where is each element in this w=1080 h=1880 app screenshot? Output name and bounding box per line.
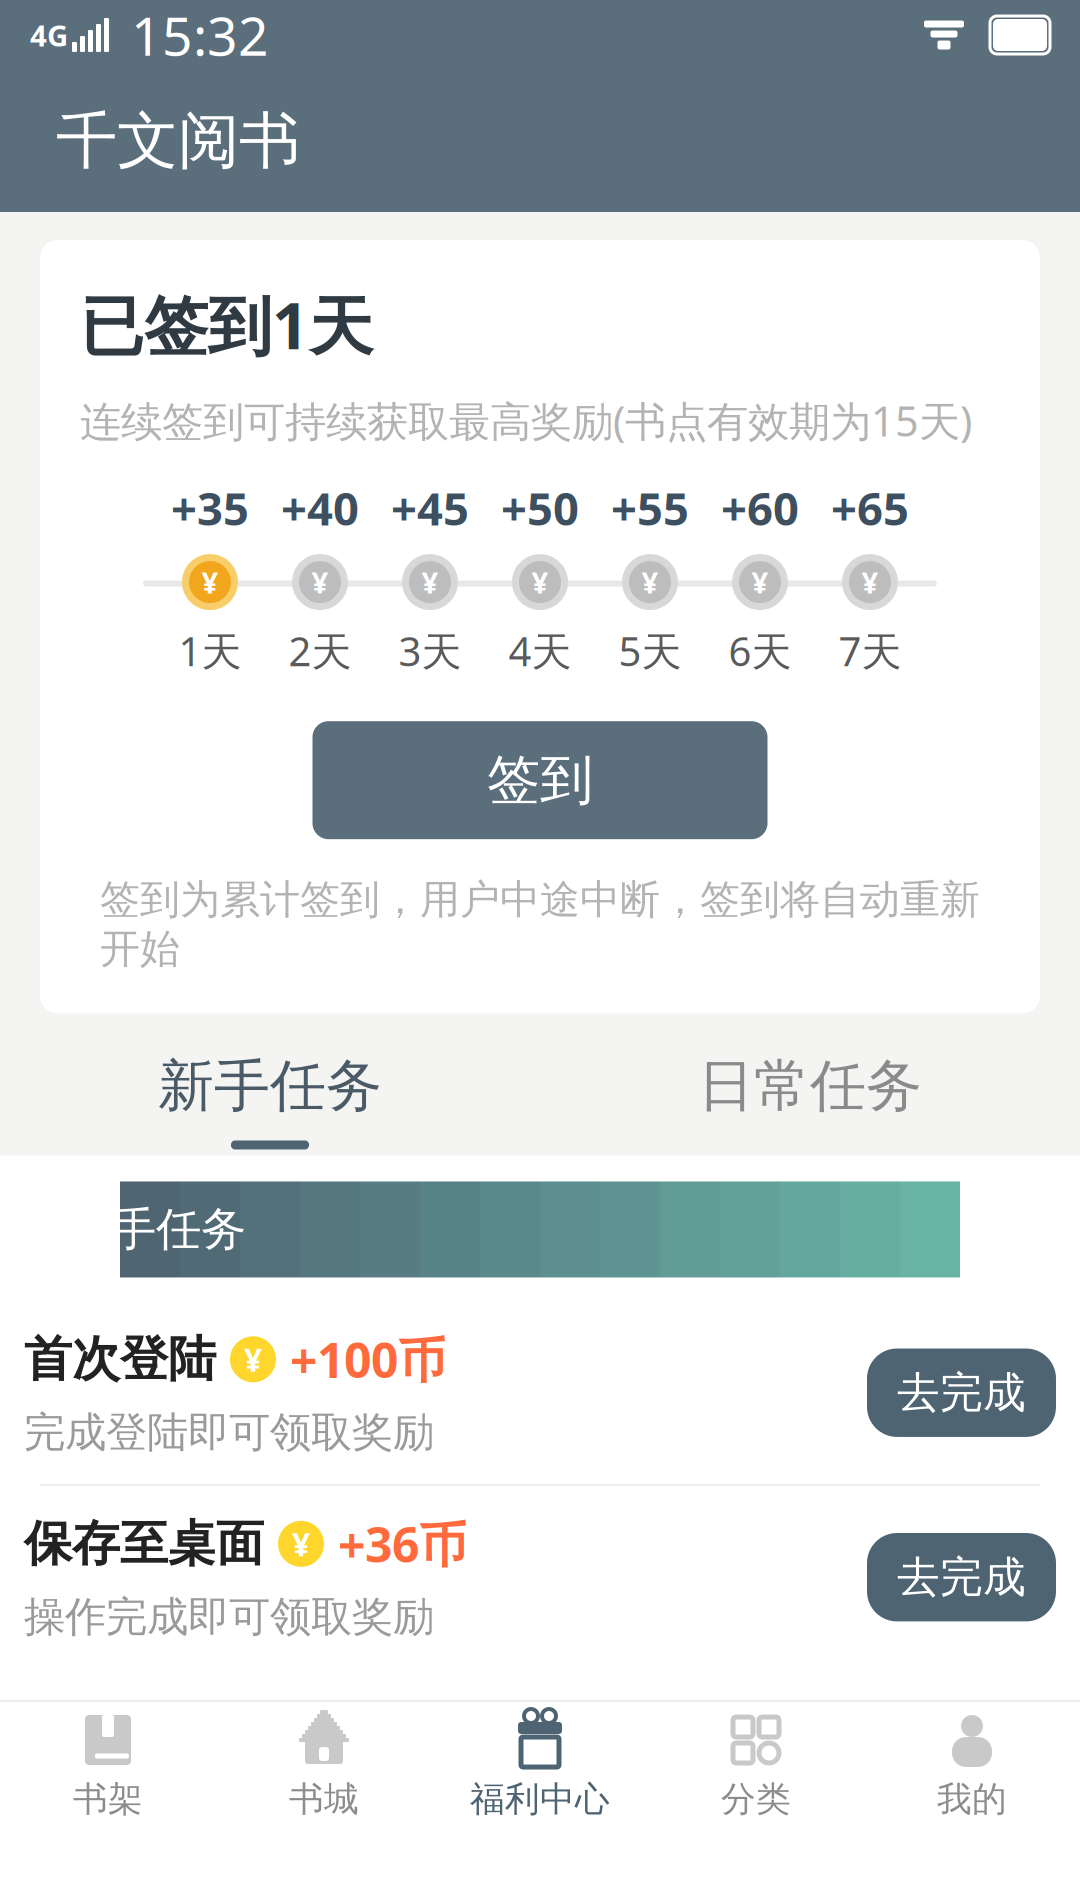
- staticText: 操作完成即可领取奖励: [24, 1592, 434, 1642]
- staticText: 完成登陆即可领取奖励: [24, 1407, 434, 1458]
- button[interactable]: 书城: [216, 1702, 432, 1831]
- staticText: ¥: [292, 1523, 310, 1565]
- staticText: ¥: [531, 563, 548, 602]
- staticText: 4G: [30, 15, 68, 54]
- staticText: 书城: [289, 1778, 359, 1821]
- staticText: +35: [171, 478, 249, 538]
- staticText: 书架: [73, 1778, 143, 1821]
- button[interactable]: 保存至桌面: [0, 1486, 1080, 1668]
- staticText: 我的: [937, 1778, 1007, 1821]
- staticText: ¥: [861, 563, 878, 602]
- staticText: 首次登陆: [24, 1330, 216, 1389]
- button[interactable]: 书架: [0, 1702, 216, 1831]
- staticText: ¥: [201, 563, 218, 602]
- staticText: ¥: [421, 563, 438, 602]
- staticText: 7天: [838, 624, 901, 677]
- staticText: ¥: [641, 563, 658, 602]
- staticText: +100币: [290, 1327, 446, 1391]
- staticText: 签到为累计签到，用户中途中断，签到将自动重新开始: [100, 875, 980, 973]
- staticText: 3天: [398, 624, 461, 677]
- staticText: 15:32: [131, 0, 269, 70]
- staticText: +60: [721, 478, 799, 538]
- staticText: 1天: [178, 624, 241, 677]
- staticText: 福利中心: [470, 1778, 610, 1821]
- staticText: +36币: [338, 1512, 467, 1576]
- staticText: +65: [831, 478, 909, 538]
- staticText: 6天: [728, 624, 791, 677]
- staticText: 2天: [288, 624, 351, 677]
- staticText: 日常任务: [698, 1052, 922, 1120]
- button[interactable]: 日常任务: [540, 1013, 1080, 1155]
- button[interactable]: 福利中心: [432, 1702, 648, 1831]
- staticText: ¥: [751, 563, 768, 602]
- staticText: 连续签到可持续获取最高奖励(书点有效期为15天): [80, 393, 972, 448]
- staticText: ¥: [311, 563, 328, 602]
- staticText: +50: [501, 478, 579, 538]
- button[interactable]: 分类: [648, 1702, 864, 1831]
- staticText: 4天: [508, 624, 571, 677]
- staticText: +40: [281, 478, 359, 538]
- staticText: ¥: [244, 1338, 262, 1381]
- staticText: 已签到1天: [80, 282, 373, 367]
- button[interactable]: 我的: [864, 1702, 1080, 1831]
- button[interactable]: 首次登陆: [0, 1301, 1080, 1484]
- staticText: 分类: [721, 1778, 791, 1821]
- staticText: 新手任务: [158, 1052, 382, 1120]
- staticText: 去完成: [897, 1366, 1026, 1419]
- button[interactable]: 新手任务: [0, 1013, 540, 1155]
- staticText: 保存至桌面: [24, 1514, 264, 1573]
- staticText: 新手任务: [66, 1202, 246, 1257]
- staticText: 千文阅书: [56, 103, 300, 179]
- staticText: 去完成: [897, 1551, 1026, 1603]
- button[interactable]: 签到: [312, 721, 767, 839]
- staticText: 签到: [487, 747, 593, 813]
- staticText: +55: [611, 478, 689, 538]
- staticText: 5天: [618, 624, 681, 677]
- staticText: +45: [391, 478, 469, 538]
